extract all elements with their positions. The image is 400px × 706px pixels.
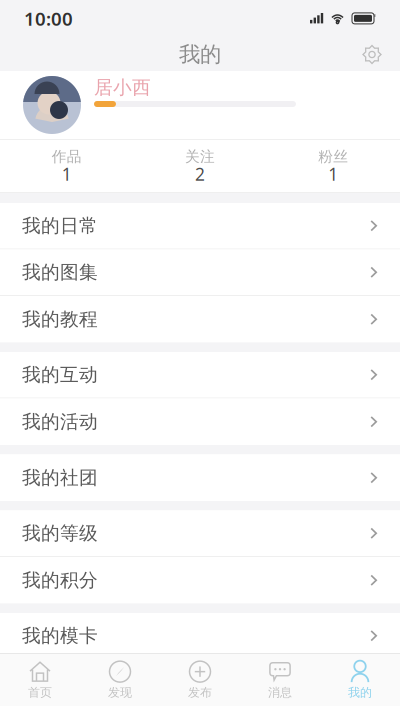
staticText: 1: [62, 162, 72, 185]
button[interactable]: 我的等级: [0, 510, 400, 557]
button[interactable]: 我的日常: [0, 203, 400, 249]
staticText: 我的等级: [22, 522, 98, 545]
staticText: 我的图集: [22, 261, 98, 284]
staticText: 我的: [348, 685, 372, 700]
button[interactable]: 我的: [320, 654, 400, 706]
button[interactable]: 发现: [80, 654, 160, 706]
staticText: 居小西: [94, 76, 151, 99]
staticText: 发布: [188, 685, 212, 700]
button[interactable]: 粉丝: [267, 140, 400, 192]
button[interactable]: 发布: [160, 654, 240, 706]
button[interactable]: 关注: [133, 140, 267, 192]
button[interactable]: 我的教程: [0, 296, 400, 342]
staticText: 首页: [28, 685, 52, 700]
staticText: 2: [195, 162, 205, 185]
staticText: 我的积分: [22, 569, 98, 592]
staticText: 作品: [52, 147, 82, 165]
staticText: 10:00: [24, 6, 73, 31]
staticText: 我的关注: [22, 671, 98, 694]
staticText: 我的互动: [22, 363, 98, 386]
button[interactable]: 首页: [0, 654, 80, 706]
staticText: 1: [328, 162, 338, 185]
button[interactable]: 作品: [0, 140, 133, 192]
staticText: 关注: [185, 147, 215, 165]
staticText: 我的教程: [22, 308, 98, 331]
staticText: 粉丝: [318, 147, 348, 165]
staticText: 我的活动: [22, 410, 98, 433]
button[interactable]: 居小西: [0, 71, 400, 139]
staticText: 消息: [268, 685, 292, 700]
staticText: 我的模卡: [22, 624, 98, 647]
staticText: 我的日常: [22, 214, 98, 237]
button[interactable]: 消息: [240, 654, 320, 706]
button[interactable]: 我的活动: [0, 398, 400, 445]
button[interactable]: 我的社团: [0, 454, 400, 501]
button[interactable]: 我的图集: [0, 249, 400, 296]
staticText: 我的: [179, 41, 221, 68]
button[interactable]: 我的互动: [0, 352, 400, 398]
staticText: 我的社团: [22, 466, 98, 489]
button[interactable]: 我的积分: [0, 557, 400, 603]
button[interactable]: 我的模卡: [0, 613, 400, 659]
staticText: 发现: [108, 685, 132, 700]
button[interactable]: Settings: [353, 38, 391, 71]
button[interactable]: 我的关注: [0, 659, 400, 706]
